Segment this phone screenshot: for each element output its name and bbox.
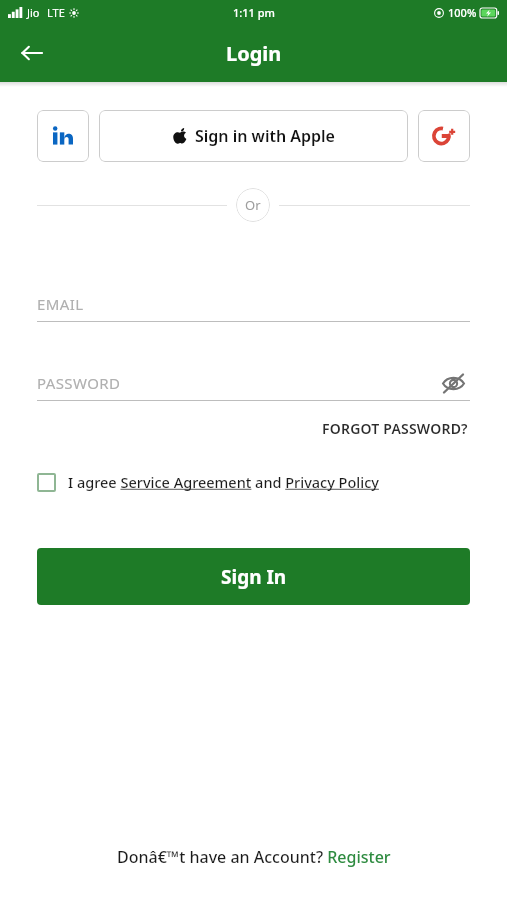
- staticText: EMAIL: [37, 294, 84, 314]
- staticText: FORGOT PASSWORD?: [322, 419, 468, 438]
- button[interactable]: Sign in with Apple: [99, 110, 408, 162]
- button[interactable]: FORGOT PASSWORD?: [320, 416, 470, 441]
- staticText: PASSWORD: [37, 373, 121, 393]
- staticText: LTE: [47, 5, 65, 20]
- button[interactable]: Show password: [436, 366, 470, 400]
- button[interactable]: EMAIL: [37, 287, 470, 321]
- staticText: Or: [245, 196, 261, 214]
- staticText: Login: [226, 40, 282, 67]
- staticText: Donâ€™t have an Account? Register: [117, 846, 391, 868]
- staticText: 100%: [448, 5, 477, 20]
- staticText: Sign in with Apple: [195, 125, 335, 147]
- staticText: Sign In: [221, 564, 287, 590]
- button[interactable]: Sign in with LinkedIn: [37, 110, 89, 162]
- staticText: 1:11 pm: [233, 5, 275, 20]
- staticText: Jio: [27, 5, 40, 20]
- button[interactable]: Sign in with Google: [418, 110, 470, 162]
- button[interactable]: I agree Service Agreement and Privacy Po…: [37, 472, 470, 492]
- button[interactable]: Sign In: [37, 548, 470, 605]
- staticText: I agree Service Agreement and Privacy Po…: [68, 472, 379, 492]
- button[interactable]: PASSWORD: [37, 366, 470, 400]
- button[interactable]: Donâ€™t have an Account? Register: [113, 842, 395, 872]
- button[interactable]: Back: [10, 31, 54, 75]
